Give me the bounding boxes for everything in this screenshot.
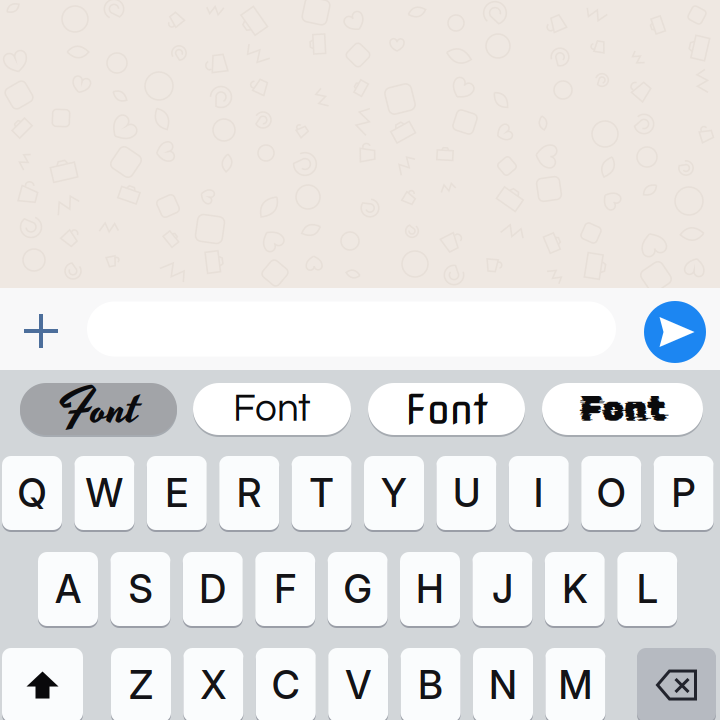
button[interactable]: E [147,456,207,530]
button[interactable]: Y [364,456,424,530]
button[interactable]: Delete [637,648,716,720]
staticText: L [637,566,658,612]
staticText: E [165,470,188,516]
button[interactable]: M [545,648,605,720]
staticText: T [310,470,334,516]
button[interactable]: Font [193,383,351,435]
staticText: A [55,566,81,612]
button[interactable]: Font [20,383,177,435]
staticText: H [416,566,444,612]
staticText: Font [58,374,139,444]
button[interactable]: K [545,552,605,626]
staticText: M [558,662,592,708]
button[interactable]: R [219,456,279,530]
button[interactable]: U [436,456,496,530]
button[interactable]: F [255,552,315,626]
staticText: D [199,566,226,612]
staticText: Q [17,470,46,516]
button[interactable]: T [292,456,352,530]
button[interactable]: V [328,648,388,720]
button[interactable]: Q [2,456,62,530]
button[interactable]: Z [111,648,171,720]
button[interactable]: Shift [2,648,83,720]
button[interactable]: N [473,648,533,720]
button[interactable]: B [401,648,461,720]
button[interactable]: Attach [12,302,70,360]
button[interactable]: O [581,456,641,530]
button[interactable]: G [328,552,388,626]
button[interactable]: C [256,648,316,720]
staticText: P [672,470,696,516]
staticText: G [344,566,372,612]
staticText: O [597,470,626,516]
button[interactable]: P [654,456,714,530]
staticText: Font [233,389,311,429]
button[interactable]: J [472,552,532,626]
staticText: K [562,566,587,612]
staticText: N [489,662,517,708]
staticText: S [128,566,152,612]
button[interactable]: I [509,456,569,530]
button[interactable]: S [110,552,170,626]
staticText: B [418,662,443,708]
staticText: Y [381,470,407,516]
button[interactable]: Font [368,383,525,435]
staticText: Z [129,662,153,708]
button[interactable]: L [617,552,677,626]
staticText: Font [580,388,665,430]
button[interactable]: Send [644,301,706,363]
staticText: W [85,470,123,516]
staticText: C [272,662,300,708]
staticText: X [200,662,226,708]
staticText: I [534,470,544,516]
button[interactable]: X [183,648,243,720]
button[interactable]: A [38,552,98,626]
staticText: F [274,566,296,612]
staticText: V [345,662,371,708]
staticText: Font [405,384,488,434]
button[interactable]: W [74,456,134,530]
staticText: U [453,470,480,516]
button[interactable]: D [183,552,243,626]
staticText: R [237,470,262,516]
button[interactable]: H [400,552,460,626]
button[interactable]: Font [542,383,703,435]
staticText: J [492,566,513,612]
